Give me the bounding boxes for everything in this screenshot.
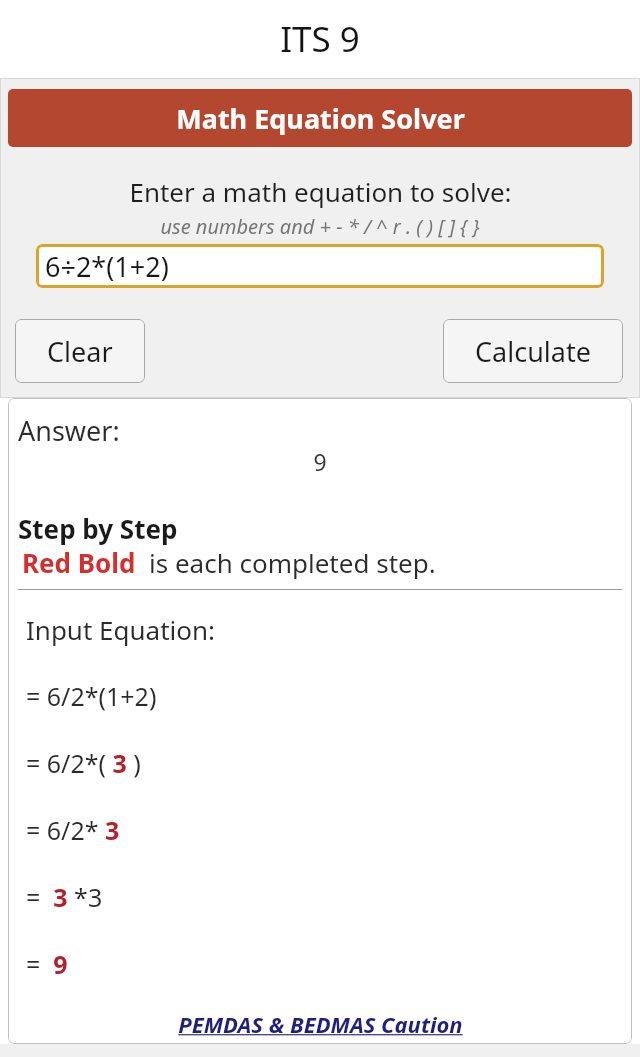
staticText: = 9 bbox=[26, 947, 68, 981]
staticText: Clear bbox=[47, 333, 113, 370]
staticText: 9 bbox=[313, 446, 327, 477]
staticText: = 6/2*(1+2) bbox=[26, 679, 157, 713]
button[interactable]: Clear bbox=[15, 319, 145, 383]
staticText: 6÷2*(1+2) bbox=[45, 248, 169, 285]
staticText: Step by Step bbox=[18, 511, 178, 546]
staticText: = 6/2*( 3 ) bbox=[26, 746, 141, 780]
staticText: Math Equation Solver bbox=[176, 100, 465, 137]
staticText: = 6/2* 3 bbox=[26, 813, 120, 847]
button[interactable]: Math Equation Solver bbox=[8, 89, 632, 147]
staticText: Calculate bbox=[475, 333, 591, 370]
staticText: PEMDAS & BEDMAS Caution bbox=[178, 1009, 463, 1039]
staticText: = 3 *3 bbox=[26, 880, 103, 914]
button[interactable]: PEMDAS & BEDMAS Caution bbox=[8, 1009, 632, 1039]
staticText: Answer: bbox=[18, 412, 120, 449]
staticText: use numbers and + - * / ^ r . ( ) [ ] { … bbox=[160, 213, 480, 240]
staticText: Enter a math equation to solve: bbox=[129, 174, 512, 209]
staticText: Input Equation: bbox=[26, 612, 216, 647]
staticText: ITS 9 bbox=[280, 15, 360, 63]
button[interactable]: Calculate bbox=[443, 319, 623, 383]
button[interactable]: 6÷2*(1+2) bbox=[36, 244, 604, 288]
staticText: Red Bold is each completed step. bbox=[22, 545, 436, 580]
